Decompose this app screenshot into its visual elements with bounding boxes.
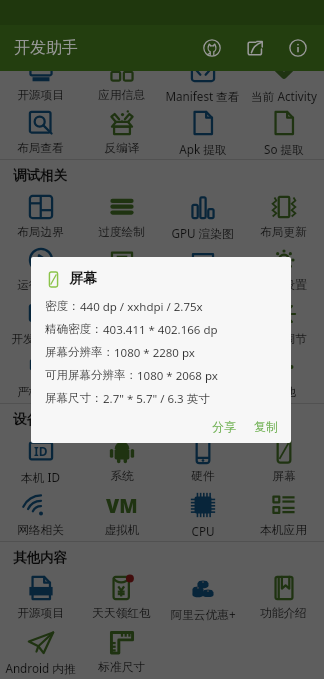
staticText: 网络 <box>191 385 215 400</box>
button[interactable]: 本机应用 <box>243 493 324 538</box>
button[interactable]: Info <box>276 25 319 71</box>
staticText: 应用信息 <box>98 88 145 103</box>
staticText: 2.7" * 5.7" / 6.3 英寸 <box>103 391 210 407</box>
button[interactable]: 布局查看 <box>0 111 81 156</box>
staticText: 布局更新 <box>260 225 307 240</box>
button[interactable]: 开源项目 <box>0 58 81 103</box>
button[interactable]: 硬件 <box>162 439 243 484</box>
button[interactable]: Apk 提取 <box>162 111 243 157</box>
staticText: 布局设置 <box>260 278 307 293</box>
staticText: 其他 <box>272 385 296 400</box>
staticText: 当前 Activity <box>251 88 317 104</box>
button[interactable]: 布局设置 <box>243 248 324 293</box>
staticText: VM <box>106 493 138 517</box>
staticText: 可用屏幕分辨率： <box>45 368 137 382</box>
button[interactable]: 分享 <box>207 416 241 437</box>
staticText: 开源项目 <box>17 88 64 103</box>
staticText: 本机应用 <box>260 523 307 538</box>
button[interactable]: 内存信息 <box>162 248 243 293</box>
button[interactable]: 进程信息 <box>162 302 243 347</box>
staticText: 屏幕尺寸： <box>45 391 103 405</box>
button[interactable]: 阿里云优惠+ <box>162 576 243 622</box>
button[interactable]: 开发者选项 <box>0 302 81 347</box>
staticText: ID <box>34 443 48 459</box>
staticText: 设备相关 <box>13 411 67 427</box>
staticText: Android 内推 <box>5 660 76 676</box>
staticText: 日志 <box>110 385 134 400</box>
staticText: Service <box>102 332 141 348</box>
staticText: 系统 <box>110 469 134 484</box>
staticText: 密度： <box>45 299 80 313</box>
staticText: 功能介绍 <box>260 606 307 621</box>
staticText: 虚拟机 <box>104 523 140 538</box>
button[interactable]: 网络相关 <box>0 493 81 538</box>
staticText: GPU 信息 <box>96 278 147 294</box>
button[interactable]: 屏幕 <box>243 439 324 484</box>
button[interactable]: 严格模式 <box>0 355 81 400</box>
button[interactable]: 布局更新 <box>243 195 324 240</box>
button[interactable]: Share <box>233 25 276 71</box>
button[interactable]: 反编译 <box>81 111 162 156</box>
button[interactable]: 运行信息 <box>0 248 81 293</box>
button[interactable]: Manifest 查看 <box>162 58 243 104</box>
staticText: 严格模式 <box>17 385 64 400</box>
button[interactable]: GPU 信息 <box>81 248 162 294</box>
staticText: 开发助手 <box>14 38 78 58</box>
staticText: 屏幕 <box>69 270 97 288</box>
button[interactable]: 功能介绍 <box>243 576 324 621</box>
button[interactable]: So 提取 <box>243 111 324 157</box>
staticText: 进程信息 <box>179 332 226 347</box>
button[interactable]: 系统 <box>81 439 162 484</box>
staticText: 精确密度： <box>45 322 103 336</box>
button[interactable]: ID <box>0 439 81 485</box>
button[interactable]: 应用信息 <box>81 58 162 103</box>
button[interactable]: CPU <box>162 493 243 539</box>
button[interactable]: VM <box>81 493 162 538</box>
button[interactable]: Service <box>81 302 162 348</box>
button[interactable]: 开源项目 <box>0 576 81 621</box>
button[interactable]: Android 内推 <box>0 630 81 676</box>
staticText: GPU 渲染图 <box>171 225 234 241</box>
button[interactable]: 亮度调节 <box>243 302 324 347</box>
staticText: 403.411 * 402.166 dp <box>103 322 218 338</box>
staticText: 1080 * 2280 px <box>114 345 195 361</box>
button[interactable]: GitHub <box>190 25 233 71</box>
button[interactable]: GPU 渲染图 <box>162 195 243 241</box>
staticText: 网络相关 <box>17 523 64 538</box>
staticText: 阿里云优惠+ <box>170 606 236 622</box>
staticText: So 提取 <box>264 141 304 157</box>
staticText: 开源项目 <box>17 606 64 621</box>
staticText: 布局边界 <box>17 225 64 240</box>
staticText: CPU <box>191 523 215 539</box>
staticText: 440 dp / xxhdpi / 2.75x <box>80 299 203 315</box>
button[interactable]: 其他 <box>243 355 324 400</box>
staticText: 亮度调节 <box>260 332 307 347</box>
staticText: 屏幕分辨率： <box>45 345 114 359</box>
staticText: 其他内容 <box>13 549 67 565</box>
button[interactable]: 布局边界 <box>0 195 81 240</box>
button[interactable]: 网络 <box>162 355 243 400</box>
button[interactable]: 当前 Activity <box>243 58 324 104</box>
staticText: Apk 提取 <box>179 141 227 157</box>
button[interactable]: 日志 <box>81 355 162 400</box>
staticText: 调试相关 <box>13 167 67 183</box>
staticText: 过度绘制 <box>98 225 145 240</box>
button[interactable]: 复制 <box>249 416 283 437</box>
staticText: 屏幕 <box>272 469 296 484</box>
staticText: 天天领红包 <box>92 606 151 621</box>
staticText: Manifest 查看 <box>165 88 240 104</box>
staticText: 布局查看 <box>17 141 64 156</box>
button[interactable]: 过度绘制 <box>81 195 162 240</box>
staticText: 本机 ID <box>21 469 60 485</box>
button[interactable]: 天天领红包 <box>81 576 162 621</box>
staticText: 反编译 <box>104 141 140 156</box>
staticText: 1080 * 2068 px <box>137 368 218 384</box>
staticText: 运行信息 <box>17 278 64 293</box>
staticText: 硬件 <box>191 469 215 484</box>
staticText: 标准尺寸 <box>98 660 145 675</box>
button[interactable]: 标准尺寸 <box>81 630 162 675</box>
staticText: 开发者选项 <box>11 332 70 347</box>
